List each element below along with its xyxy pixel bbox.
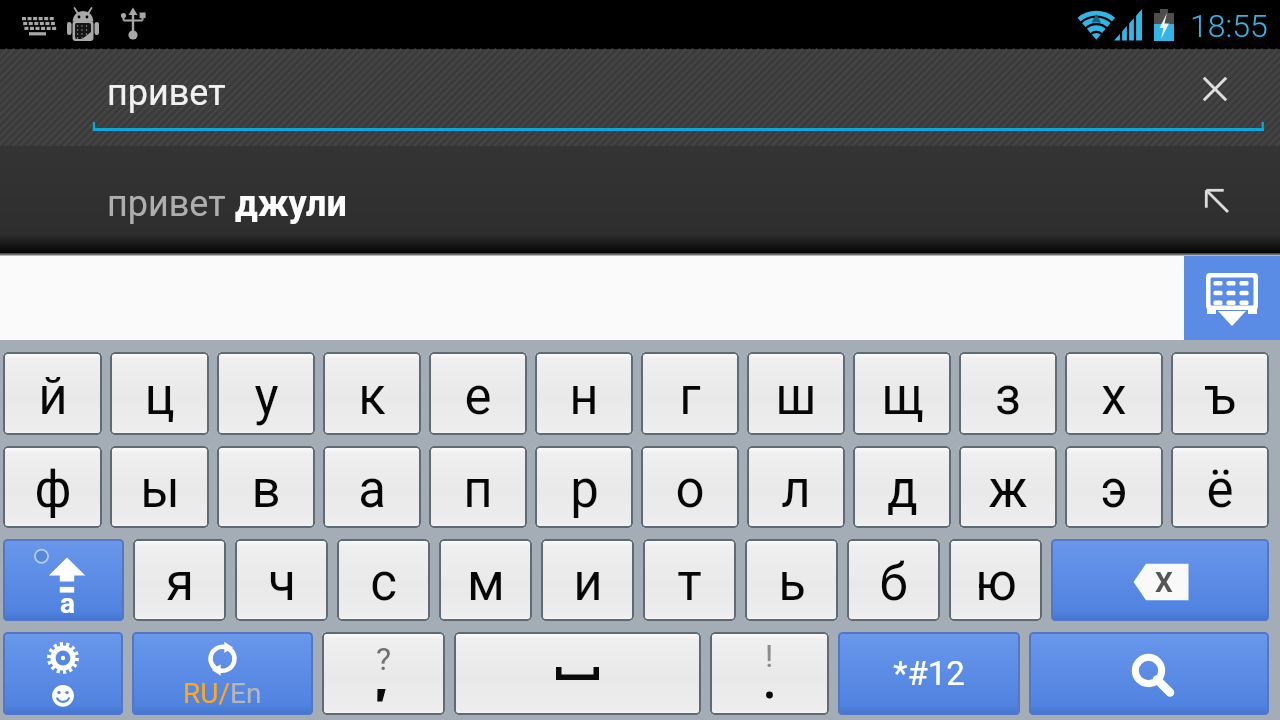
button[interactable]: ч [235, 539, 328, 621]
staticText: ч [268, 553, 296, 613]
button[interactable]: ж [959, 446, 1057, 528]
staticText: ь [778, 553, 806, 613]
staticText: з [995, 367, 1021, 427]
staticText: ы [140, 460, 180, 520]
staticText: a [60, 587, 75, 620]
staticText: ш [775, 367, 817, 427]
staticText: ж [988, 460, 1028, 520]
staticText: о [675, 460, 705, 520]
button[interactable]: Insert suggestion [1205, 189, 1229, 213]
staticText: ё [1206, 460, 1234, 520]
button[interactable]: привет [0, 146, 1280, 256]
button[interactable]: д [853, 446, 951, 528]
staticText: привет [107, 72, 226, 114]
button[interactable]: Period [710, 632, 829, 715]
staticText: ю [975, 553, 1017, 613]
staticText: х [1101, 367, 1127, 427]
button[interactable]: ё [1171, 446, 1269, 528]
button[interactable]: у [217, 352, 315, 435]
staticText: 18:55 [1190, 7, 1268, 45]
staticText: привет [107, 183, 235, 225]
staticText: с [370, 553, 397, 613]
staticText: т [677, 553, 702, 613]
staticText: п [463, 460, 493, 520]
button[interactable]: б [847, 539, 940, 621]
button[interactable]: г [641, 352, 739, 435]
button[interactable]: а [323, 446, 421, 528]
button[interactable]: р [535, 446, 633, 528]
staticText: н [569, 367, 599, 427]
button[interactable]: ф [3, 446, 102, 528]
button[interactable]: Space [454, 632, 701, 715]
button[interactable]: я [133, 539, 226, 621]
staticText: ! [765, 637, 774, 675]
button[interactable]: э [1065, 446, 1163, 528]
staticText: в [251, 460, 281, 520]
staticText: к [358, 367, 386, 427]
button[interactable]: Clear text [1183, 57, 1247, 121]
staticText: л [781, 460, 811, 520]
button[interactable]: щ [853, 352, 951, 435]
button[interactable]: х [1065, 352, 1163, 435]
staticText: б [879, 553, 908, 613]
staticText: д [887, 460, 918, 520]
button[interactable]: Shift [3, 539, 124, 621]
button[interactable]: Comma [322, 632, 445, 715]
button[interactable]: ш [747, 352, 845, 435]
staticText: р [570, 460, 599, 520]
button[interactable]: Settings [3, 632, 123, 715]
staticText: й [38, 367, 68, 427]
staticText: ? [376, 640, 392, 678]
button[interactable]: н [535, 352, 633, 435]
staticText: джули [235, 183, 347, 225]
staticText: En [230, 677, 262, 710]
button[interactable]: ы [110, 446, 209, 528]
staticText: *#12 [893, 654, 965, 693]
button[interactable]: в [217, 446, 315, 528]
button[interactable]: *#12 [838, 632, 1020, 715]
button[interactable]: с [337, 539, 430, 621]
staticText: и [573, 553, 603, 613]
button[interactable]: и [541, 539, 634, 621]
staticText: RU/ [183, 677, 230, 710]
staticText: X [1155, 566, 1173, 599]
button[interactable]: й [3, 352, 102, 435]
button[interactable]: з [959, 352, 1057, 435]
staticText: я [166, 553, 194, 613]
button[interactable]: о [641, 446, 739, 528]
staticText: ф [34, 460, 72, 520]
button[interactable]: Backspace [1051, 539, 1269, 621]
button[interactable]: ъ [1171, 352, 1269, 435]
button[interactable]: т [643, 539, 736, 621]
button[interactable]: м [439, 539, 532, 621]
button[interactable]: е [429, 352, 527, 435]
button[interactable]: ц [110, 352, 209, 435]
button[interactable]: Search [1029, 632, 1269, 715]
button[interactable]: п [429, 446, 527, 528]
button[interactable]: л [747, 446, 845, 528]
staticText: у [254, 367, 279, 427]
staticText: г [679, 367, 701, 427]
staticText: е [464, 367, 492, 427]
button[interactable]: Hide keyboard [1184, 256, 1280, 340]
button[interactable]: Switch language [132, 632, 313, 715]
staticText: м [467, 553, 505, 613]
button[interactable]: к [323, 352, 421, 435]
staticText: ъ [1204, 367, 1236, 427]
staticText: ц [144, 367, 175, 427]
staticText: а [358, 460, 386, 520]
button[interactable]: ю [949, 539, 1042, 621]
button[interactable]: ь [745, 539, 838, 621]
staticText: э [1100, 460, 1128, 520]
staticText: щ [881, 367, 924, 427]
